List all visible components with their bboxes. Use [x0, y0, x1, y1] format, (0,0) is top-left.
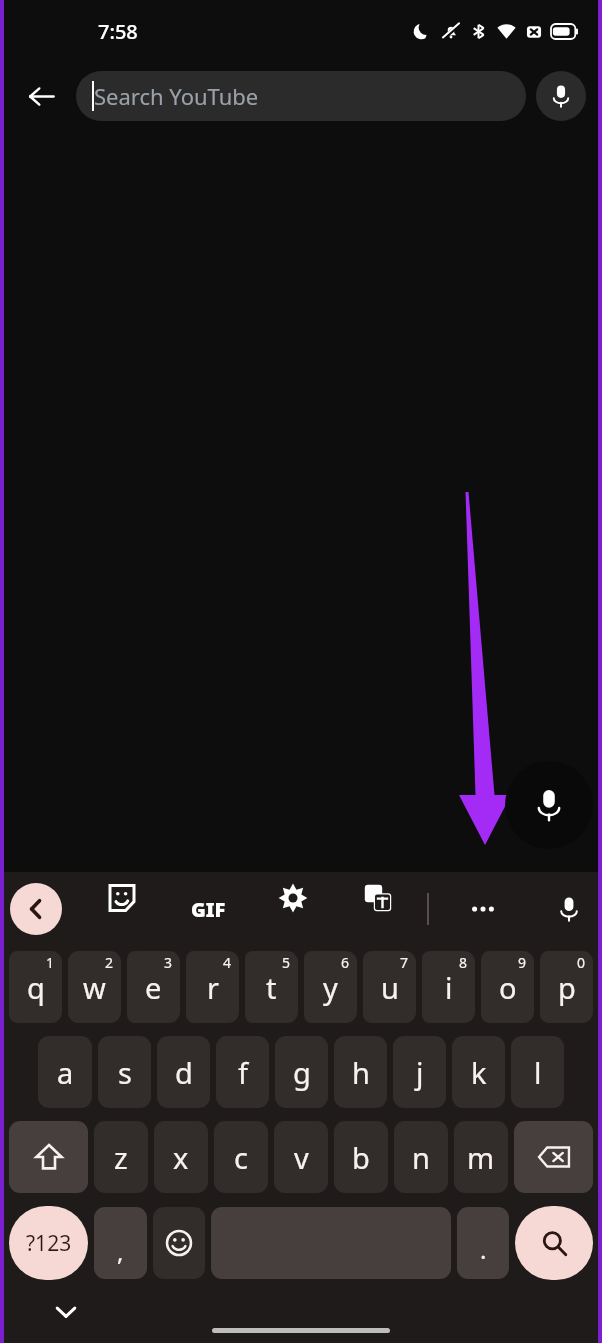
staticText: 2 — [105, 953, 114, 972]
staticText: m — [467, 1138, 495, 1177]
staticText: f — [238, 1053, 248, 1092]
button[interactable]: Stickers — [96, 872, 148, 924]
button[interactable]: More options — [457, 883, 509, 935]
staticText: o — [499, 968, 517, 1007]
button[interactable]: o — [481, 951, 534, 1023]
staticText: e — [145, 968, 162, 1007]
staticText: a — [57, 1053, 74, 1092]
button[interactable]: e — [127, 951, 180, 1023]
button[interactable]: ?123 — [9, 1206, 88, 1280]
staticText: ?123 — [26, 1229, 72, 1258]
button[interactable]: Hide keyboard — [42, 1288, 90, 1336]
button[interactable]: a — [38, 1036, 92, 1108]
button[interactable]: j — [393, 1036, 446, 1108]
button[interactable]: p — [540, 951, 593, 1023]
button[interactable]: Backspace — [514, 1121, 593, 1193]
button[interactable]: Settings — [267, 872, 319, 924]
staticText: b — [352, 1138, 370, 1177]
button[interactable]: p — [540, 951, 557, 1023]
button[interactable]: l — [511, 1036, 564, 1108]
button[interactable]: u — [363, 951, 380, 1023]
button[interactable]: Previous — [10, 883, 62, 935]
button[interactable]: h — [334, 1036, 387, 1108]
button[interactable]: y — [304, 951, 357, 1023]
staticText: d — [175, 1053, 193, 1092]
staticText: h — [352, 1053, 370, 1092]
button[interactable]: . — [457, 1207, 509, 1279]
staticText: j — [416, 1053, 424, 1092]
button[interactable]: x — [154, 1121, 208, 1193]
button[interactable]: Translate — [352, 872, 404, 924]
staticText: l — [534, 1053, 542, 1092]
staticText: u — [381, 968, 399, 1007]
staticText: g — [293, 1053, 311, 1092]
staticText: 1 — [46, 953, 55, 972]
staticText: w — [68, 969, 90, 1006]
button[interactable]: v — [274, 1121, 328, 1193]
button[interactable]: Search YouTube — [76, 71, 526, 121]
button[interactable]: s — [98, 1036, 151, 1108]
staticText: 7:58 — [98, 18, 138, 45]
staticText: n — [412, 1138, 430, 1177]
button[interactable]: Voice search — [505, 761, 593, 849]
button[interactable]: r — [186, 951, 239, 1023]
button[interactable]: Voice input — [543, 883, 595, 935]
staticText: t — [266, 968, 277, 1007]
button[interactable]: o — [481, 951, 498, 1023]
button[interactable]: w — [68, 951, 121, 1023]
button[interactable]: t — [245, 951, 298, 1023]
button[interactable]: q — [9, 951, 26, 1023]
button[interactable]: g — [275, 1036, 328, 1108]
staticText: r — [207, 968, 219, 1007]
staticText: . — [480, 1233, 487, 1266]
button[interactable]: f — [216, 1036, 269, 1108]
button[interactable]: u — [363, 951, 416, 1023]
button[interactable]: Voice search — [536, 71, 586, 121]
staticText: Search YouTube — [94, 81, 259, 111]
button[interactable]: Space — [211, 1207, 451, 1279]
button[interactable]: GIF — [182, 883, 234, 935]
staticText: GIF — [191, 896, 226, 923]
staticText: 6 — [341, 953, 350, 972]
staticText: x — [173, 1138, 189, 1177]
button[interactable]: m — [454, 1121, 508, 1193]
button[interactable]: z — [94, 1121, 148, 1193]
button[interactable]: Back — [16, 71, 66, 121]
button[interactable]: Search — [515, 1206, 593, 1280]
staticText: y — [323, 968, 338, 1007]
staticText: p — [558, 968, 576, 1007]
button[interactable]: n — [394, 1121, 448, 1193]
button[interactable]: d — [157, 1036, 210, 1108]
staticText: 7 — [400, 953, 409, 972]
button[interactable]: b — [334, 1121, 388, 1193]
button[interactable]: Emoji — [153, 1207, 205, 1279]
button[interactable]: Shift — [9, 1121, 88, 1193]
button[interactable]: q — [9, 951, 62, 1023]
staticText: 5 — [282, 953, 291, 972]
button[interactable]: , — [94, 1207, 147, 1279]
staticText: z — [114, 1138, 128, 1177]
button[interactable]: w — [68, 951, 90, 1023]
button[interactable]: k — [452, 1036, 505, 1108]
button[interactable]: i — [422, 951, 475, 1023]
button[interactable]: c — [214, 1121, 268, 1193]
staticText: , — [117, 1235, 124, 1268]
